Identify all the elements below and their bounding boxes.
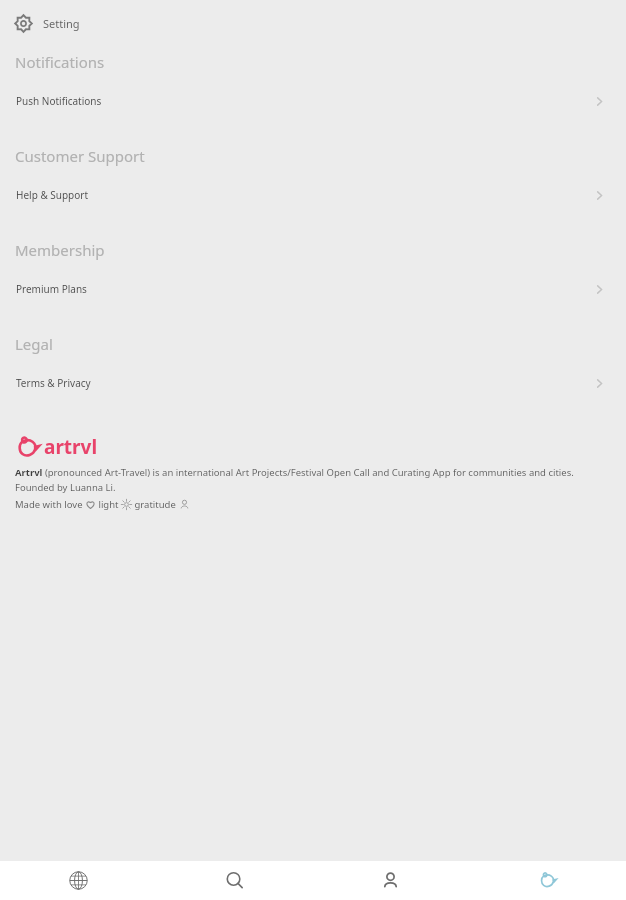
staticText: Push Notifications <box>16 94 102 108</box>
staticText: Artrvl (pronounced Art-Travel) is an int… <box>15 466 598 494</box>
button[interactable]: Settings <box>0 0 626 46</box>
other: Settings <box>15 15 32 32</box>
button[interactable]: Push Notifications <box>0 78 626 124</box>
button[interactable]: Search <box>156 861 312 900</box>
button[interactable]: Explore <box>0 861 156 900</box>
staticText: Made with love <box>15 498 85 511</box>
staticText: Customer Support <box>15 146 145 166</box>
staticText: artrvl <box>44 434 98 460</box>
staticText: Legal <box>15 334 53 354</box>
button[interactable]: Help & Support <box>0 172 626 218</box>
staticText: Terms & Privacy <box>16 376 91 390</box>
staticText: Premium Plans <box>16 282 87 296</box>
staticText: Membership <box>15 240 105 260</box>
button[interactable]: Profile <box>312 861 469 900</box>
staticText: gratitude <box>132 498 179 511</box>
button[interactable]: Artrvl <box>469 861 626 900</box>
button[interactable]: Terms & Privacy <box>0 360 626 406</box>
staticText: Setting <box>43 16 80 31</box>
staticText: Help & Support <box>16 188 89 202</box>
staticText: Notifications <box>15 52 105 72</box>
button[interactable]: Premium Plans <box>0 266 626 312</box>
staticText: light <box>96 498 121 511</box>
